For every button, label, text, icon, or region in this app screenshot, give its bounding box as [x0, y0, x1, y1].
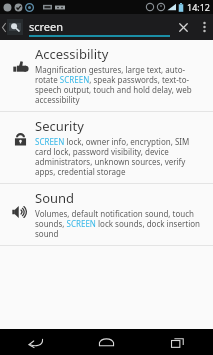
staticText: Sound [35, 189, 75, 207]
button[interactable]: Recent apps [142, 329, 213, 355]
button[interactable]: More options [196, 14, 213, 40]
button[interactable]: Back [0, 329, 71, 355]
staticText: SCREEN lock, owner info, encryption, SIM… [35, 136, 206, 177]
button[interactable]: Navigate up [0, 14, 25, 40]
staticText: screen [29, 19, 64, 34]
button[interactable]: Accessibility [0, 40, 213, 111]
staticText: Accessibility [35, 45, 109, 63]
button[interactable]: Clear search [170, 14, 196, 40]
staticText: Volumes, default notification sound, tou… [35, 208, 206, 239]
button[interactable]: Home [71, 329, 142, 355]
staticText: 14:12 [187, 1, 211, 13]
button[interactable]: Sound [0, 184, 213, 245]
staticText: Magnification gestures, large text, auto… [35, 64, 206, 105]
button[interactable]: Security [0, 112, 213, 183]
staticText: Security [35, 117, 84, 135]
